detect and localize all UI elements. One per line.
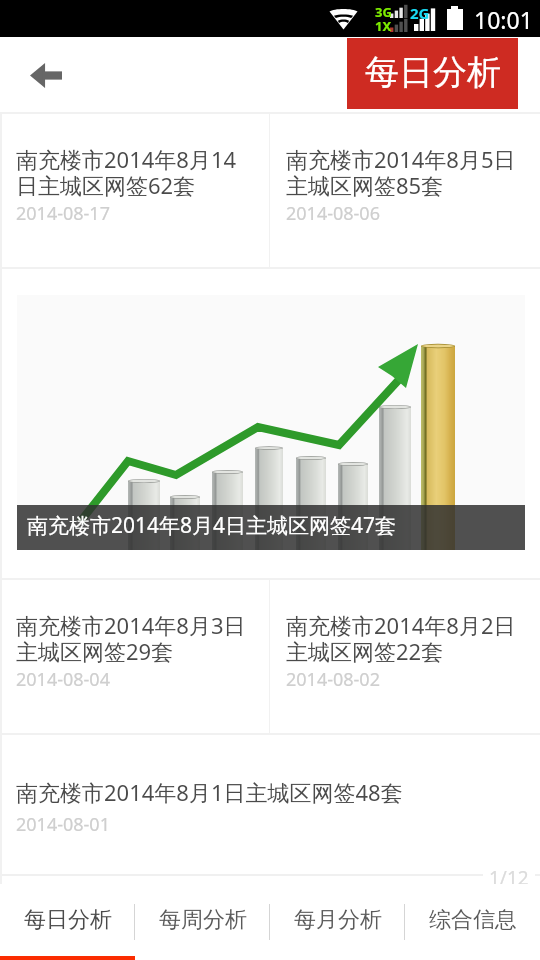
staticText: 南充楼市2014年8月1日主城区网签48套: [16, 777, 403, 807]
staticText: 每月分析: [294, 906, 382, 934]
button[interactable]: 每月分析: [270, 884, 405, 960]
staticText: 南充楼市2014年8月2日 主城区网签22套: [286, 610, 516, 667]
button[interactable]: 南充楼市2014年8月4日主城区网签47套: [17, 295, 525, 550]
button[interactable]: 每日分析: [0, 884, 135, 960]
staticText: 每日分析: [365, 51, 501, 94]
staticText: 2014-08-17: [16, 201, 110, 226]
staticText: 南充楼市2014年8月4日主城区网签47套: [27, 511, 397, 540]
button[interactable]: 南充楼市2014年8月2日 主城区网签22套: [270, 580, 540, 733]
staticText: 2014-08-01: [16, 812, 110, 837]
staticText: 综合信息: [429, 906, 517, 934]
button[interactable]: 每日分析: [347, 38, 518, 109]
button[interactable]: 每周分析: [135, 884, 270, 960]
staticText: 南充楼市2014年8月14 日主城区网签62套: [16, 144, 237, 201]
staticText: 1/12: [489, 865, 529, 884]
staticText: 2014-08-02: [286, 667, 380, 692]
staticText: 2014-08-06: [286, 201, 380, 226]
staticText: 10:01: [474, 4, 533, 35]
staticText: 1X: [375, 17, 392, 35]
staticText: 每周分析: [159, 906, 247, 934]
button[interactable]: 南充楼市2014年8月5日 主城区网签85套: [270, 114, 540, 267]
staticText: 2014-08-04: [16, 667, 110, 692]
button[interactable]: 南充楼市2014年8月3日 主城区网签29套: [0, 580, 269, 733]
staticText: 南充楼市2014年8月3日 主城区网签29套: [16, 610, 246, 667]
staticText: 3G: [375, 3, 392, 21]
button[interactable]: 南充楼市2014年8月14 日主城区网签62套: [0, 114, 269, 267]
staticText: 2G: [410, 3, 430, 23]
staticText: 南充楼市2014年8月5日 主城区网签85套: [286, 144, 516, 201]
staticText: 每日分析: [24, 906, 112, 934]
button[interactable]: 综合信息: [405, 884, 540, 960]
button[interactable]: Back: [22, 51, 70, 99]
button[interactable]: 南充楼市2014年8月1日主城区网签48套: [0, 735, 540, 865]
